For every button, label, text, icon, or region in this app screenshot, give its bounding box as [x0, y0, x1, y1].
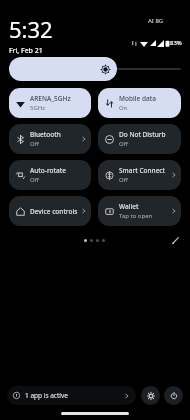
button[interactable]: 1 app is active — [7, 386, 136, 405]
staticText: Off — [119, 176, 128, 184]
staticText: 1 app is active — [25, 391, 68, 400]
staticText: On — [119, 104, 128, 112]
staticText: 5GHz — [30, 104, 46, 112]
staticText: Off — [119, 140, 128, 148]
button[interactable]: Do Not Disturb — [98, 124, 181, 154]
button[interactable]: Edit tiles — [171, 236, 180, 245]
button[interactable]: Bluetooth — [9, 124, 91, 154]
staticText: Wallet — [119, 202, 139, 211]
button[interactable]: Device controls — [9, 196, 91, 226]
button[interactable]: Mobile data — [98, 88, 181, 118]
staticText: 83% — [170, 39, 182, 47]
button[interactable]: Auto-rotate — [9, 160, 91, 190]
button[interactable]: Power — [164, 386, 183, 405]
staticText: Device controls — [30, 207, 78, 216]
staticText: 5:32 — [9, 14, 53, 44]
staticText: Smart Connect — [119, 166, 166, 175]
staticText: Off — [30, 176, 39, 184]
staticText: AI 8G — [148, 17, 164, 25]
staticText: Do Not Disturb — [119, 130, 166, 139]
button[interactable]: Smart Connect — [98, 160, 181, 190]
staticText: Auto-rotate — [30, 166, 66, 175]
staticText: Mobile data — [119, 94, 156, 103]
staticText: Fri, Feb 21 — [9, 46, 43, 56]
button[interactable]: ARENA_5GHz — [9, 88, 91, 118]
staticText: ARENA_5GHz — [30, 94, 71, 103]
staticText: Tap to open — [119, 212, 153, 220]
staticText: Bluetooth — [30, 130, 61, 139]
button[interactable]: Brightness — [9, 57, 117, 81]
button[interactable]: Settings — [141, 386, 160, 405]
button[interactable]: Wallet — [98, 196, 181, 226]
staticText: Off — [30, 140, 39, 148]
